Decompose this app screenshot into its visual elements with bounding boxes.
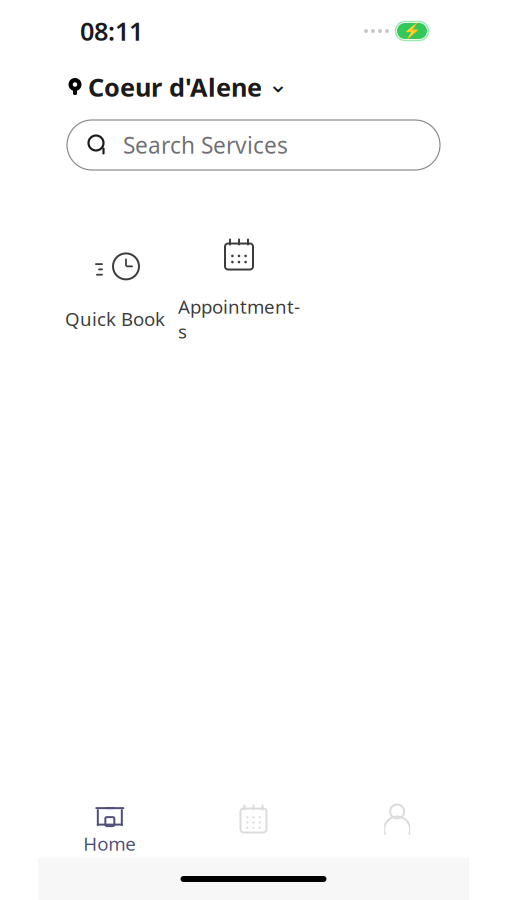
staticText: Appointments bbox=[178, 294, 300, 344]
button[interactable]: Appointments bbox=[182, 796, 325, 858]
button[interactable]: Coeur d'Alene bbox=[68, 70, 288, 104]
button[interactable]: Search Services bbox=[67, 120, 440, 170]
button[interactable]: Quick Book bbox=[65, 246, 165, 331]
staticText: Search Services bbox=[123, 130, 288, 160]
staticText: Quick Book bbox=[65, 306, 165, 331]
button[interactable]: Appointments bbox=[178, 234, 300, 344]
staticText: Home bbox=[83, 831, 136, 856]
staticText: ⌄ bbox=[268, 70, 288, 98]
button[interactable]: Profile bbox=[325, 796, 469, 858]
staticText: 08:11 bbox=[80, 14, 143, 48]
button[interactable]: Home bbox=[38, 796, 182, 858]
staticText: Coeur d'Alene bbox=[88, 70, 262, 104]
staticText: ⚡ bbox=[403, 23, 421, 39]
